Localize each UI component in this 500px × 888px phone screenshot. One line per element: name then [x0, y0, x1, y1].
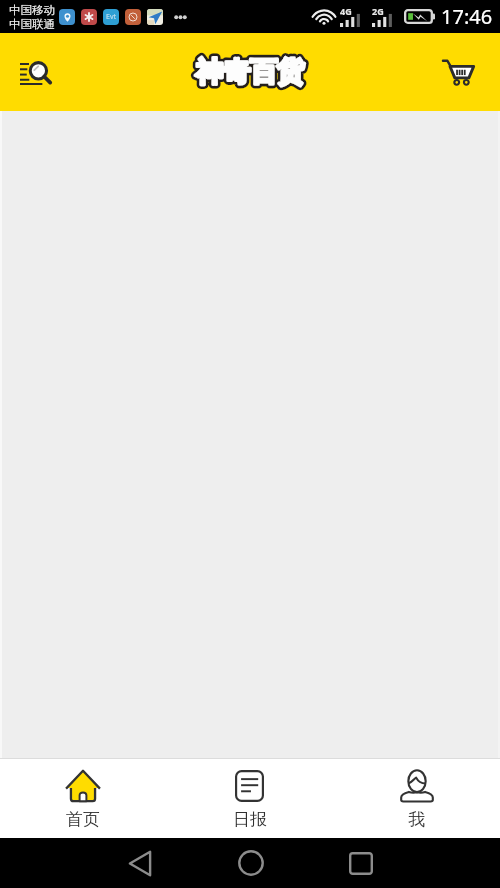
staticText: 中国移动	[9, 3, 55, 17]
staticText: 日报	[233, 809, 267, 830]
button[interactable]: 首页	[0, 759, 166, 838]
staticText: Evt	[106, 12, 116, 22]
staticText: 神奇百货	[196, 55, 304, 89]
staticText: 4G	[340, 5, 352, 17]
button[interactable]: Back	[114, 838, 165, 888]
staticText: 2G	[372, 5, 384, 17]
button[interactable]: 我	[333, 759, 500, 838]
staticText: 17:46	[441, 3, 493, 30]
button[interactable]: Home	[225, 838, 276, 888]
staticText: 首页	[66, 809, 100, 830]
staticText: 我	[408, 809, 425, 830]
button[interactable]: Shopping cart	[432, 46, 484, 98]
button[interactable]: Search categories	[9, 46, 61, 98]
button[interactable]: 日报	[166, 759, 333, 838]
button[interactable]: Recent apps	[335, 838, 386, 888]
staticText: 中国联通	[9, 17, 55, 31]
staticText: 神奇百货	[196, 55, 304, 89]
staticText: 神奇百货	[196, 55, 304, 89]
